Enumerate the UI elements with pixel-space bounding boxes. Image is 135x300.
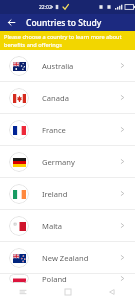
staticText: Germany bbox=[42, 157, 119, 167]
button[interactable]: Malta bbox=[0, 210, 135, 241]
button[interactable]: Germany bbox=[0, 146, 135, 177]
staticText: Australia bbox=[42, 61, 119, 71]
button[interactable]: Home bbox=[61, 285, 75, 299]
button[interactable]: Ireland bbox=[0, 178, 135, 209]
button[interactable]: Canada bbox=[0, 82, 135, 113]
button[interactable]: Back bbox=[3, 14, 20, 31]
staticText: Please choose a country to learn more ab… bbox=[4, 33, 131, 48]
staticText: Canada bbox=[42, 93, 119, 103]
button[interactable]: Recents bbox=[16, 285, 30, 299]
staticText: Malta bbox=[42, 221, 119, 231]
staticText: 22:02 bbox=[39, 4, 52, 11]
button[interactable]: Back bbox=[105, 285, 119, 299]
staticText: Poland bbox=[42, 274, 119, 283]
staticText: New Zealand bbox=[42, 253, 119, 263]
button[interactable]: France bbox=[0, 114, 135, 145]
staticText: France bbox=[42, 125, 119, 135]
staticText: Countries to Study bbox=[26, 17, 102, 29]
button[interactable]: Poland bbox=[0, 274, 135, 283]
staticText: Ireland bbox=[42, 189, 119, 199]
button[interactable]: New Zealand bbox=[0, 242, 135, 273]
button[interactable]: Australia bbox=[0, 50, 135, 81]
